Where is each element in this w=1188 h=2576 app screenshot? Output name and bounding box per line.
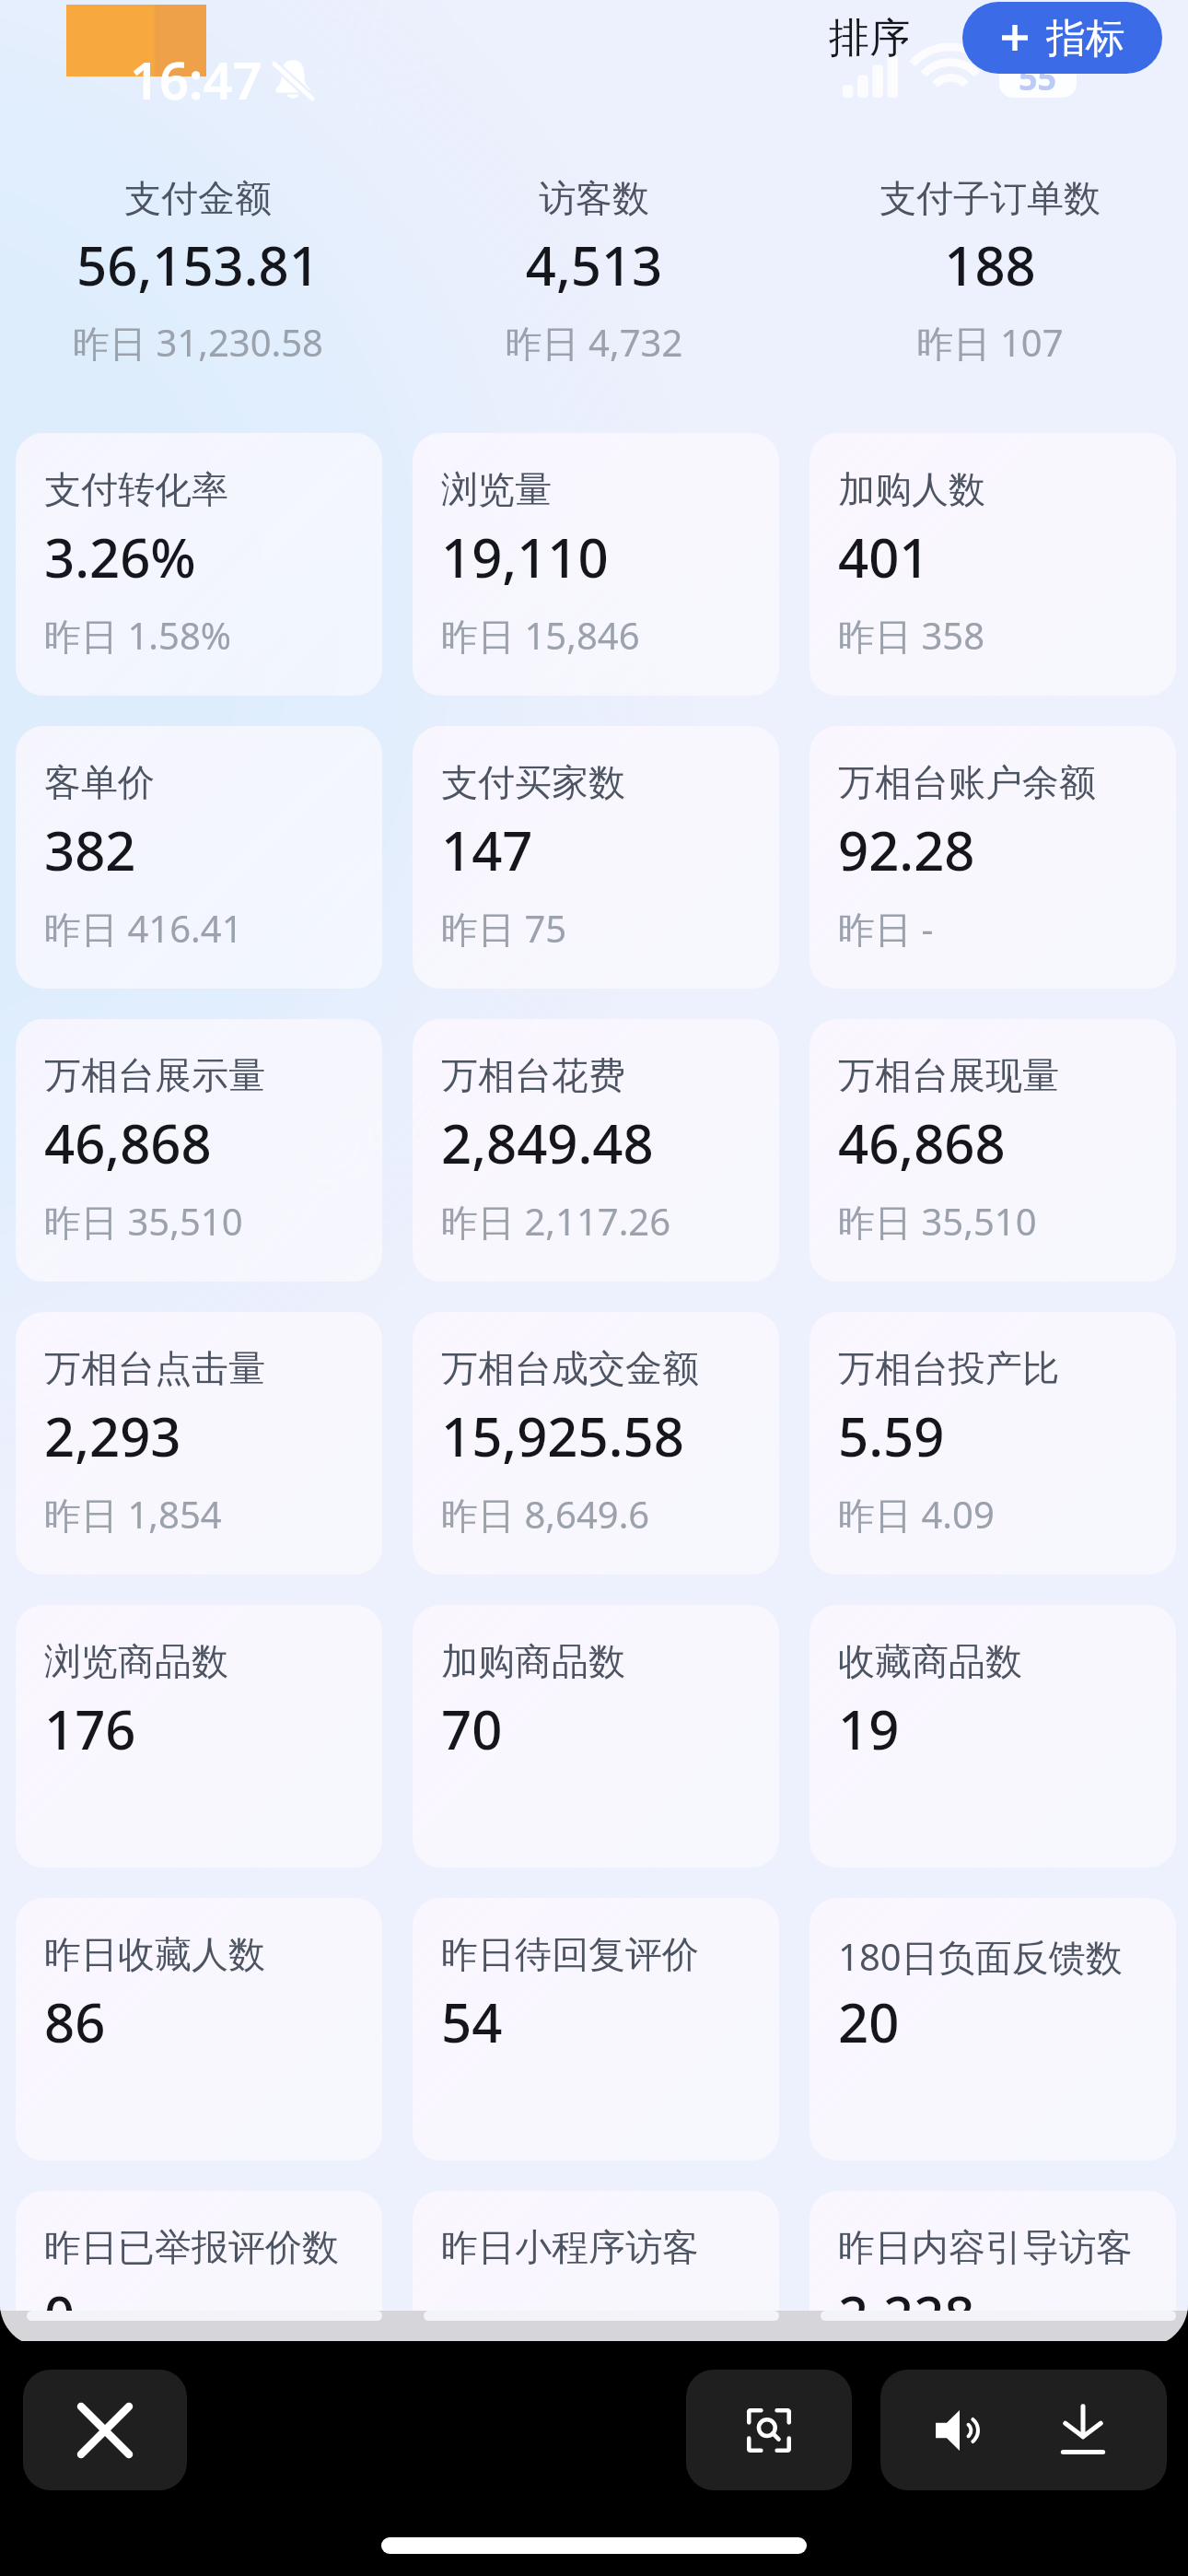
staticText: 15,925.58: [441, 1399, 684, 1472]
button[interactable]: Download: [1011, 2370, 1154, 2490]
staticText: 70: [441, 1692, 503, 1765]
button[interactable]: 万相台展示量: [16, 1019, 382, 1282]
staticText: 万相台展示量: [44, 1052, 265, 1098]
staticText: 昨日已举报评价数: [44, 2224, 339, 2270]
button[interactable]: 万相台成交金额: [413, 1312, 779, 1575]
staticText: 5.59: [838, 1399, 945, 1472]
button[interactable]: 指标: [962, 2, 1162, 74]
button[interactable]: 万相台账户余额: [809, 726, 1176, 989]
button[interactable]: Sound: [888, 2370, 1031, 2490]
staticText: 382: [44, 814, 136, 886]
staticText: 昨日 15,846: [441, 610, 640, 661]
staticText: 昨日 1.58%: [44, 610, 231, 661]
staticText: 46,868: [838, 1107, 1006, 1179]
button[interactable]: 昨日小程序访客: [413, 2191, 779, 2311]
staticText: 支付转化率: [44, 466, 228, 512]
staticText: 4,513: [396, 228, 792, 301]
button[interactable]: 万相台投产比: [809, 1312, 1176, 1575]
staticText: 188: [792, 228, 1188, 301]
button[interactable]: 支付买家数: [413, 726, 779, 989]
staticText: 指标: [1046, 14, 1125, 64]
staticText: 昨日内容引导访客: [838, 2224, 1133, 2270]
button[interactable]: 万相台点击量: [16, 1312, 382, 1575]
staticText: 昨日 358: [838, 610, 985, 661]
button[interactable]: 排序: [814, 0, 925, 76]
button[interactable]: 客单价: [16, 726, 382, 989]
staticText: 180日负面反馈数: [838, 1931, 1123, 1982]
button[interactable]: 昨日已举报评价数: [16, 2191, 382, 2311]
button[interactable]: 180日负面反馈数: [809, 1898, 1176, 2160]
staticText: 3.26%: [44, 521, 196, 593]
staticText: 昨日 416.41: [44, 903, 243, 954]
button[interactable]: 昨日内容引导访客: [809, 2191, 1176, 2311]
staticText: 加购人数: [838, 466, 985, 512]
button[interactable]: 支付转化率: [16, 433, 382, 696]
staticText: 昨日 35,510: [44, 1196, 243, 1247]
staticText: 浏览量: [441, 466, 552, 512]
staticText: 昨日 -: [838, 903, 934, 954]
staticText: 19,110: [441, 521, 609, 593]
staticText: 昨日小程序访客: [441, 2224, 699, 2270]
staticText: 2,228: [838, 2278, 975, 2311]
staticText: 昨日 75: [441, 903, 567, 954]
staticText: 54: [441, 1985, 503, 2058]
staticText: 昨日待回复评价: [441, 1931, 699, 1977]
button[interactable]: Scan: [686, 2370, 852, 2490]
staticText: 昨日 4,732: [396, 317, 792, 368]
staticText: 401: [838, 521, 930, 593]
staticText: 20: [838, 1985, 900, 2058]
staticText: 昨日 8,649.6: [441, 1489, 650, 1540]
staticText: 55: [1019, 55, 1057, 98]
staticText: 147: [441, 814, 533, 886]
button[interactable]: 支付金额: [0, 0, 396, 433]
staticText: 2,849.48: [441, 1107, 654, 1179]
staticText: 万相台成交金额: [441, 1345, 699, 1391]
button[interactable]: 加购人数: [809, 433, 1176, 696]
staticText: 86: [44, 1985, 106, 2058]
staticText: 万相台投产比: [838, 1345, 1059, 1391]
staticText: 万相台展现量: [838, 1052, 1059, 1098]
staticText: 昨日 4.09: [838, 1489, 995, 1540]
staticText: 昨日收藏人数: [44, 1931, 265, 1977]
staticText: 客单价: [44, 759, 155, 805]
button[interactable]: 支付子订单数: [792, 0, 1188, 433]
staticText: 19: [838, 1692, 900, 1765]
staticText: 万相台点击量: [44, 1345, 265, 1391]
button[interactable]: 万相台展现量: [809, 1019, 1176, 1282]
staticText: 昨日 31,230.58: [0, 317, 396, 368]
staticText: 46,868: [44, 1107, 212, 1179]
staticText: 176: [44, 1692, 136, 1765]
button[interactable]: 收藏商品数: [809, 1605, 1176, 1868]
staticText: 92.28: [838, 814, 975, 886]
staticText: 昨日 2,117.26: [441, 1196, 671, 1247]
staticText: 支付金额: [0, 175, 396, 221]
button[interactable]: 万相台花费: [413, 1019, 779, 1282]
staticText: 加购商品数: [441, 1638, 625, 1684]
staticText: 万相台花费: [441, 1052, 625, 1098]
staticText: 16:47: [130, 44, 262, 114]
staticText: 访客数: [396, 175, 792, 221]
staticText: 支付买家数: [441, 759, 625, 805]
button[interactable]: 昨日待回复评价: [413, 1898, 779, 2160]
staticText: 0: [44, 2278, 76, 2311]
button[interactable]: 访客数: [396, 0, 792, 433]
staticText: 万相台账户余额: [838, 759, 1096, 805]
button[interactable]: Close: [23, 2370, 187, 2490]
staticText: 收藏商品数: [838, 1638, 1022, 1684]
staticText: 排序: [829, 13, 910, 64]
button[interactable]: 浏览量: [413, 433, 779, 696]
button[interactable]: 浏览商品数: [16, 1605, 382, 1868]
button[interactable]: 昨日收藏人数: [16, 1898, 382, 2160]
staticText: 昨日 35,510: [838, 1196, 1037, 1247]
staticText: 56,153.81: [0, 228, 396, 301]
staticText: 支付子订单数: [792, 175, 1188, 221]
staticText: 昨日 107: [792, 317, 1188, 368]
button[interactable]: 加购商品数: [413, 1605, 779, 1868]
staticText: 昨日 1,854: [44, 1489, 222, 1540]
staticText: 浏览商品数: [44, 1638, 228, 1684]
staticText: 2,293: [44, 1399, 181, 1472]
